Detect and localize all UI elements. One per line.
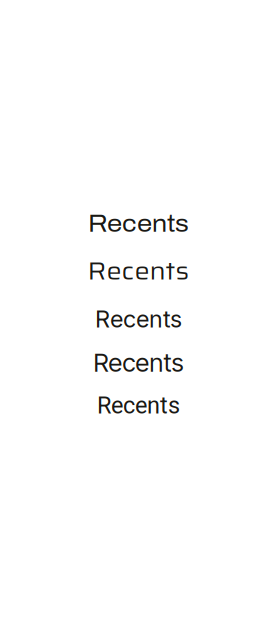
staticText: Recents [88, 211, 189, 237]
staticText: Recents [97, 392, 180, 419]
staticText: Recents [87, 251, 189, 291]
staticText: Recents [93, 347, 183, 378]
staticText: Recents [95, 305, 182, 333]
